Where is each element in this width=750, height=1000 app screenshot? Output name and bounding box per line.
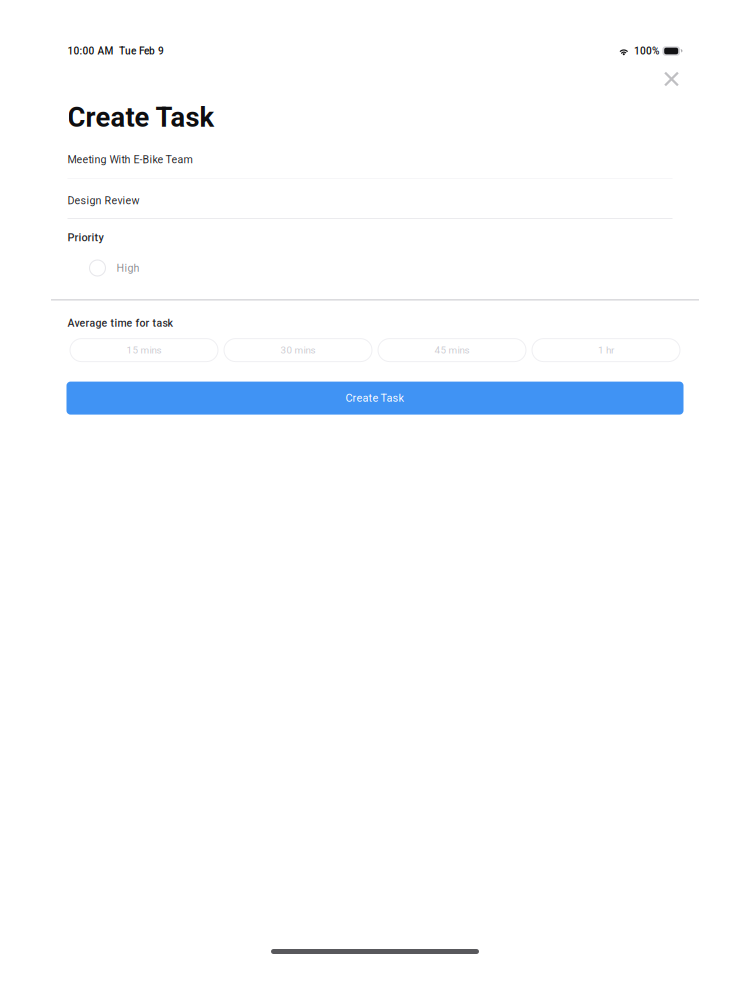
staticText: 1 hr [598,344,614,356]
button[interactable]: High [67,260,682,276]
staticText: High [116,262,139,274]
button[interactable]: Close [660,68,682,90]
staticText: 10:00 AM [67,45,113,57]
staticText: Create Task [67,101,214,133]
staticText: Create Task [345,392,404,404]
button[interactable]: Meeting With E-Bike Team [67,154,682,165]
staticText: 15 mins [126,344,161,356]
staticText: Meeting With E-Bike Team [67,153,192,166]
button[interactable]: Design Review [67,195,682,206]
staticText: Priority [67,231,103,244]
staticText: 45 mins [434,344,469,356]
staticText: 30 mins [280,344,315,356]
button[interactable]: 15 mins [70,339,218,362]
button[interactable]: 1 hr [532,339,680,362]
staticText: Average time for task [67,317,172,329]
staticText: 100% [634,45,659,57]
staticText: Design Review [67,194,139,207]
button[interactable]: 30 mins [224,339,372,362]
staticText: Tue Feb 9 [119,45,164,57]
button[interactable]: 45 mins [378,339,526,362]
button[interactable]: Create Task [66,382,683,415]
